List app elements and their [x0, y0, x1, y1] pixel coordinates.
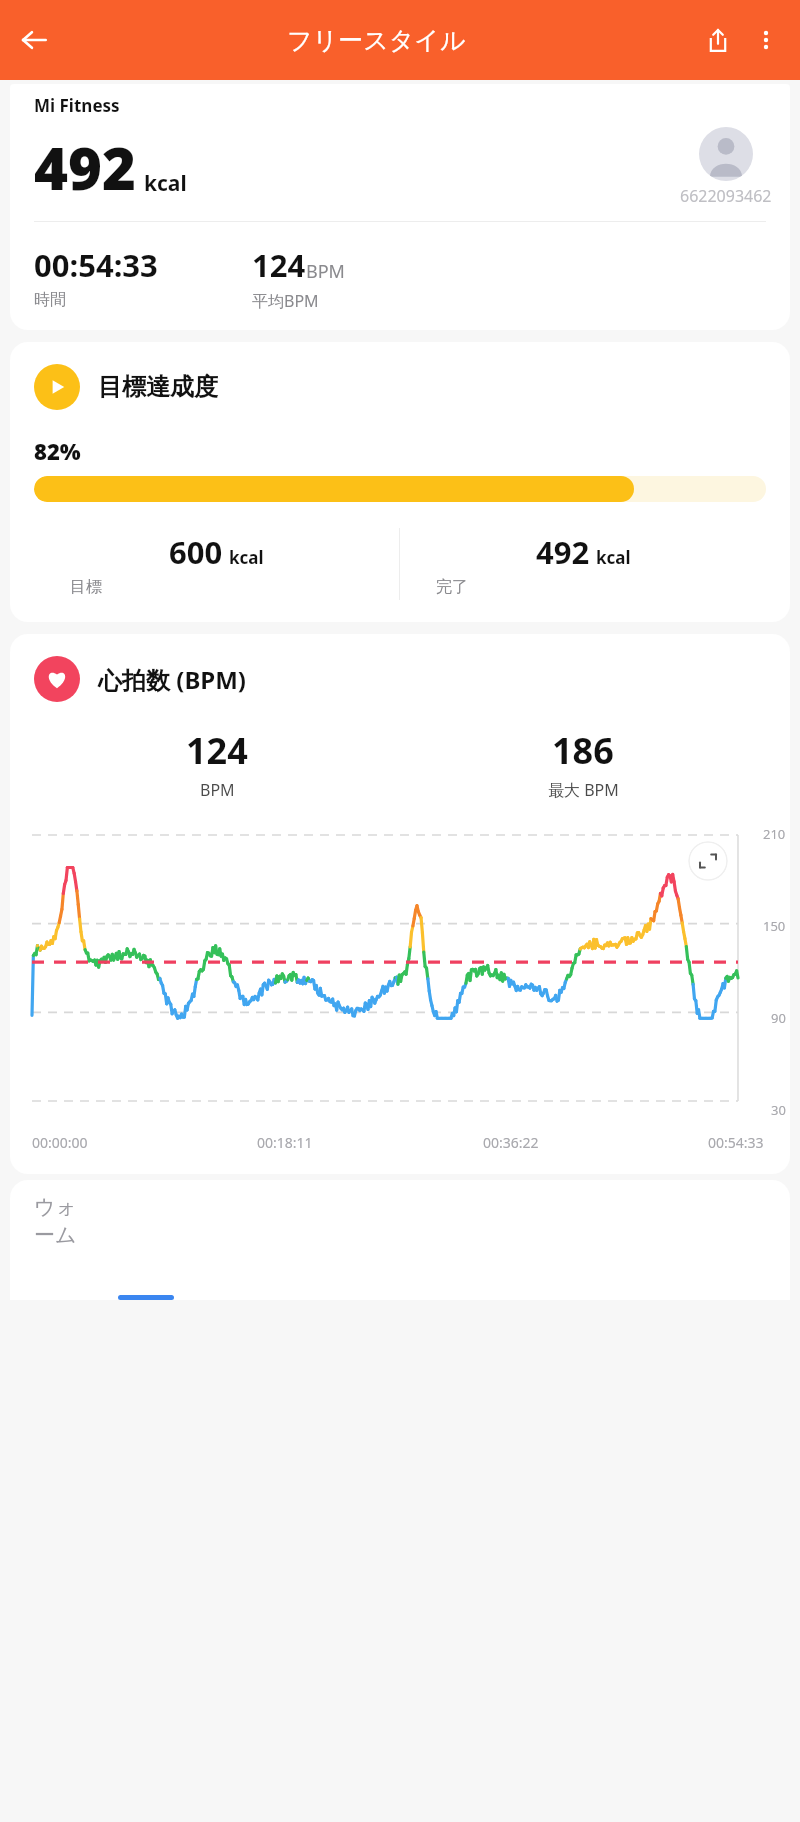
button[interactable]: 心拍数 (BPM): [10, 634, 790, 1174]
staticText: 00:00:00: [32, 1133, 88, 1152]
staticText: 6622093462: [680, 185, 772, 207]
staticText: 00:54:33: [34, 244, 158, 286]
button[interactable]: Share: [694, 16, 742, 64]
staticText: 186: [552, 726, 614, 775]
staticText: 124: [252, 244, 306, 286]
staticText: Mi Fitness: [34, 94, 120, 117]
staticText: 00:18:11: [257, 1133, 313, 1152]
staticText: 最大 BPM: [548, 779, 619, 801]
button[interactable]: Mi Fitness: [10, 84, 790, 330]
staticText: 00:36:22: [483, 1133, 539, 1152]
staticText: 心拍数 (BPM): [98, 663, 247, 696]
staticText: 平均BPM: [252, 290, 319, 312]
button[interactable]: Back: [10, 16, 58, 64]
button[interactable]: Expand chart: [688, 841, 728, 881]
staticText: kcal: [144, 169, 187, 198]
staticText: 90: [771, 1009, 786, 1027]
staticText: 目標達成度: [98, 372, 218, 402]
staticText: 150: [763, 917, 786, 935]
staticText: フリースタイル: [287, 25, 466, 56]
staticText: 82%: [34, 436, 81, 466]
staticText: 600: [169, 531, 223, 573]
staticText: 完了: [436, 577, 468, 597]
staticText: 124: [186, 726, 248, 775]
staticText: BPM: [306, 259, 345, 284]
staticText: BPM: [200, 779, 235, 801]
staticText: 210: [763, 825, 786, 843]
staticText: 492: [536, 531, 590, 573]
staticText: 時間: [34, 290, 66, 310]
button[interactable]: 目標達成度: [10, 342, 790, 622]
staticText: kcal: [229, 546, 264, 569]
staticText: ーム: [34, 1222, 77, 1248]
button[interactable]: More options: [742, 16, 790, 64]
staticText: ウォ: [34, 1194, 77, 1220]
staticText: kcal: [596, 546, 631, 569]
staticText: 00:54:33: [708, 1133, 764, 1152]
staticText: 30: [771, 1101, 786, 1119]
staticText: 目標: [70, 577, 102, 597]
staticText: 492: [34, 128, 136, 207]
